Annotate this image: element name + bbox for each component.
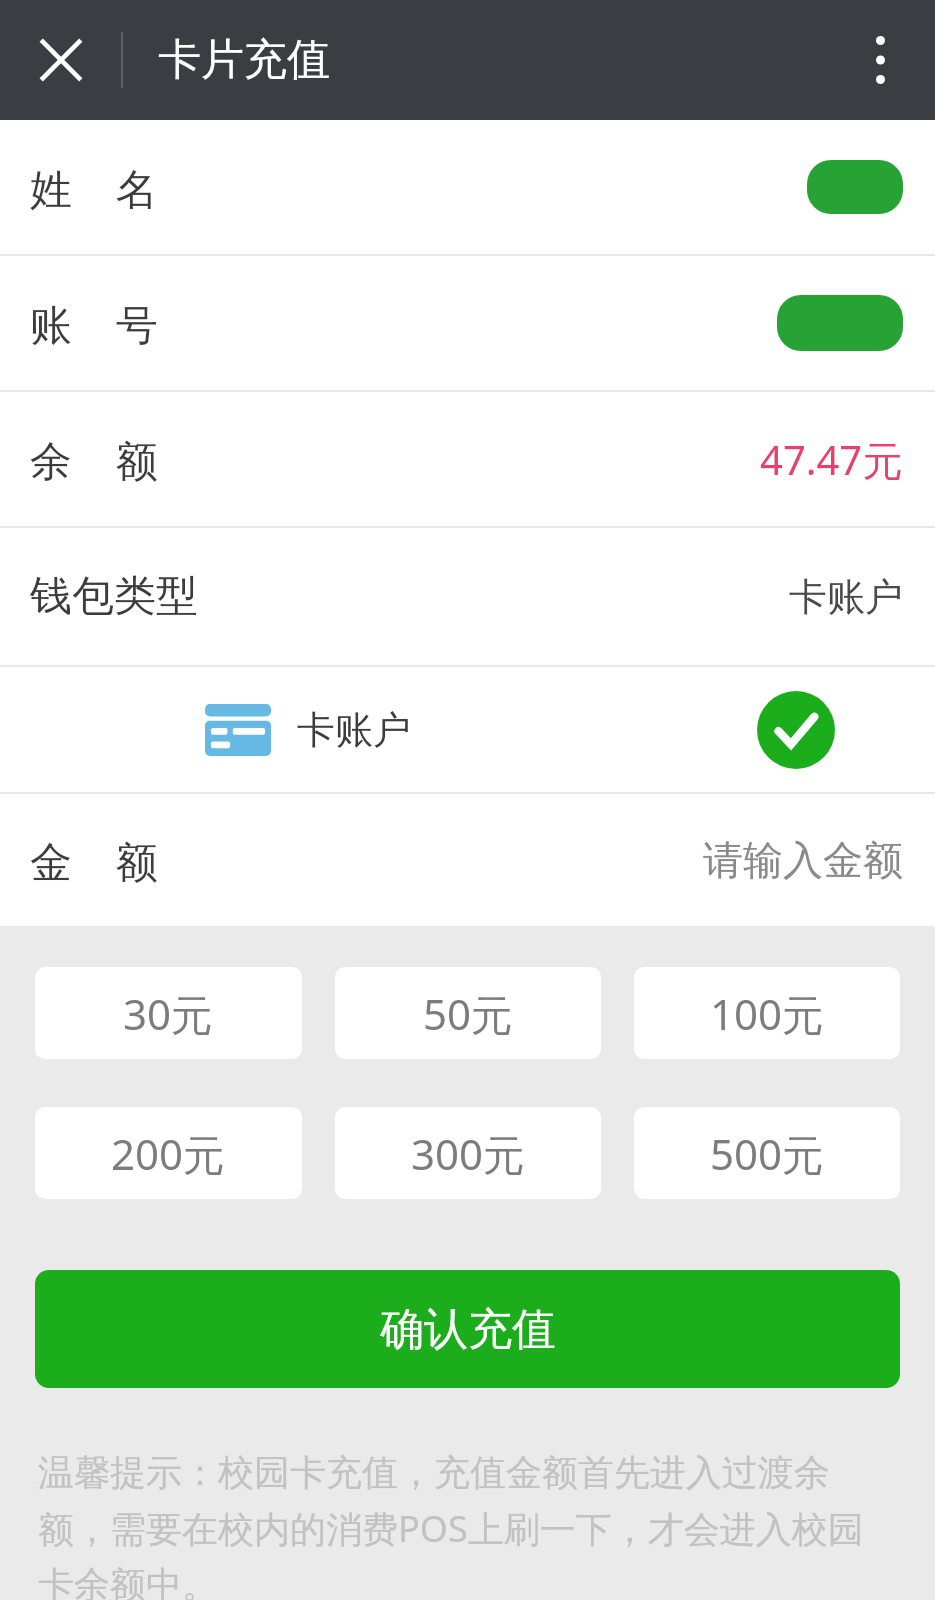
button[interactable]: 金 额 <box>0 794 935 926</box>
staticText: 确认充值 <box>380 1302 556 1357</box>
staticText: 47.47元 <box>760 432 903 487</box>
button[interactable]: 卡账户 <box>0 667 935 792</box>
staticText: 30元 <box>123 985 214 1042</box>
button[interactable]: 200元 <box>35 1107 302 1199</box>
staticText: 500元 <box>710 1125 825 1182</box>
button[interactable]: 500元 <box>634 1107 900 1199</box>
staticText: 卡账户 <box>297 706 411 754</box>
button[interactable]: 30元 <box>35 967 302 1059</box>
button[interactable]: More options <box>837 17 923 103</box>
staticText: 200元 <box>111 1125 226 1182</box>
staticText: 账 号 <box>30 295 158 352</box>
staticText: 余 额 <box>30 431 158 488</box>
staticText: 300元 <box>411 1125 526 1182</box>
button[interactable]: 300元 <box>335 1107 601 1199</box>
staticText: 100元 <box>710 985 825 1042</box>
button[interactable]: 50元 <box>335 967 601 1059</box>
button[interactable]: Close <box>18 17 104 103</box>
button[interactable]: 确认充值 <box>35 1270 900 1388</box>
staticText: 50元 <box>423 985 514 1042</box>
staticText: 温馨提示：校园卡充值，充值金额首先进入过渡余额，需要在校内的消费POS上刷一下，… <box>38 1450 897 1600</box>
staticText: 请输入金额 <box>703 835 903 885</box>
staticText: 卡片充值 <box>158 33 330 87</box>
button[interactable]: 账 号 <box>0 256 935 390</box>
staticText: 卡账户 <box>789 573 903 621</box>
button[interactable]: 100元 <box>634 967 900 1059</box>
staticText: 钱包类型 <box>30 570 198 623</box>
button[interactable]: 钱包类型 <box>0 528 935 665</box>
button[interactable]: 余 额 <box>0 392 935 526</box>
button[interactable]: 姓 名 <box>0 120 935 254</box>
staticText: 姓 名 <box>30 159 158 216</box>
staticText: 金 额 <box>30 832 158 889</box>
